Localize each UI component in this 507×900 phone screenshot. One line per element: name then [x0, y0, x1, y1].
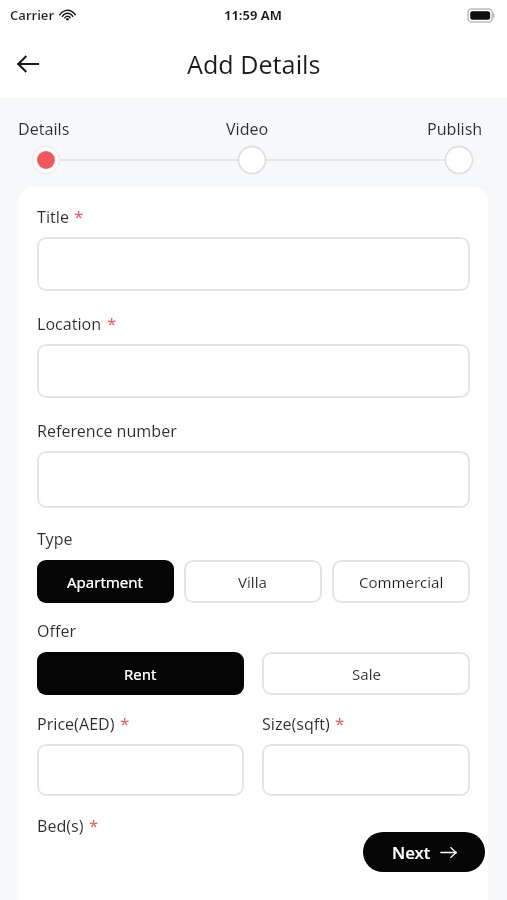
staticText: Video: [226, 118, 269, 140]
staticText: *: [89, 814, 99, 837]
staticText: Villa: [238, 572, 268, 592]
staticText: Commercial: [359, 572, 444, 592]
button[interactable]: [262, 744, 470, 796]
staticText: Carrier: [10, 6, 55, 24]
staticText: Title: [37, 206, 69, 228]
button[interactable]: Rent: [37, 652, 244, 695]
staticText: *: [335, 712, 345, 735]
staticText: Apartment: [67, 572, 144, 592]
button[interactable]: [37, 237, 470, 291]
staticText: Details: [18, 118, 70, 140]
button[interactable]: [37, 344, 470, 398]
button[interactable]: Sale: [262, 652, 470, 695]
button[interactable]: [37, 744, 244, 796]
button[interactable]: Back: [8, 44, 48, 84]
button[interactable]: Apartment: [37, 560, 174, 603]
button[interactable]: Villa: [184, 560, 322, 603]
staticText: Reference number: [37, 420, 177, 442]
staticText: Publish: [427, 118, 483, 140]
staticText: Size(sqft): [262, 713, 330, 735]
button[interactable]: Next: [363, 832, 485, 872]
staticText: Location: [37, 313, 102, 335]
staticText: *: [107, 312, 117, 335]
staticText: 11:59 AM: [224, 6, 283, 24]
staticText: Type: [37, 528, 73, 550]
staticText: Next: [392, 841, 431, 864]
staticText: Sale: [352, 664, 381, 684]
button[interactable]: Commercial: [332, 560, 470, 603]
staticText: Offer: [37, 620, 77, 642]
staticText: Rent: [124, 664, 157, 684]
staticText: Bed(s): [37, 815, 84, 837]
staticText: Price(AED): [37, 713, 115, 735]
staticText: *: [120, 712, 130, 735]
button[interactable]: [37, 451, 470, 508]
staticText: *: [74, 205, 84, 228]
staticText: Add Details: [187, 47, 321, 81]
